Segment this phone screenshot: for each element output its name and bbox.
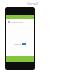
button[interactable] (6, 21, 34, 23)
button[interactable]: Get started (22, 43, 26, 45)
staticText: Gmail (27, 1, 38, 6)
